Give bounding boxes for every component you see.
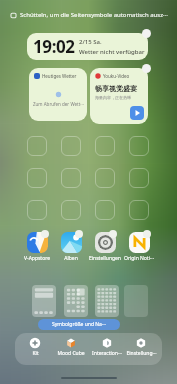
button[interactable]: Remove video widget <box>142 64 151 73</box>
button[interactable]: Mood Cube <box>65 337 77 349</box>
staticText: Einstellungen <box>89 255 121 262</box>
button[interactable]: Empty slot <box>27 200 47 220</box>
button[interactable]: Empty slot <box>129 168 149 188</box>
button[interactable]: Empty slot <box>95 136 115 156</box>
staticText: Wetter nicht verfügbar <box>79 48 145 56</box>
staticText: 2/15 Sa. <box>79 38 102 46</box>
staticText: Origin Noti··· <box>124 255 154 262</box>
button[interactable]: Settings <box>135 337 147 349</box>
staticText: Kit <box>32 350 39 357</box>
staticText: Youku-Video <box>103 73 130 79</box>
button[interactable]: Origin Noti··· <box>122 232 156 262</box>
button[interactable]: Layout option 1 <box>32 285 56 317</box>
staticText: Mood Cube <box>57 350 85 357</box>
button[interactable]: Empty slot <box>95 168 115 188</box>
button[interactable]: Empty slot <box>129 136 149 156</box>
staticText: Heutiges Wetter <box>42 73 77 79</box>
button[interactable]: Heutiges Wetter <box>29 68 87 121</box>
button[interactable]: V-Appstore <box>20 232 54 262</box>
staticText: Alben <box>64 255 78 262</box>
button[interactable]: Layout option 3 <box>95 285 119 317</box>
staticText: 海量内容，正在热播 <box>95 95 131 100</box>
button[interactable]: Einstellungen <box>88 232 122 262</box>
button[interactable]: Empty slot <box>27 136 47 156</box>
button[interactable]: 19:02 <box>27 33 148 60</box>
staticText: Schütteln, um die Seitensymbole automati… <box>20 11 168 19</box>
button[interactable]: Empty slot <box>129 200 149 220</box>
staticText: Einstellung··· <box>126 350 157 357</box>
button[interactable]: Remove clock widget <box>142 29 151 38</box>
staticText: 19:02 <box>33 35 75 58</box>
button[interactable]: Settings <box>123 337 159 357</box>
button[interactable]: Interaction <box>89 337 125 357</box>
staticText: Interaction··· <box>92 350 122 357</box>
button[interactable]: Kit <box>29 337 41 349</box>
staticText: V-Appstore <box>24 255 50 262</box>
button[interactable]: Symbolgröße und Na··· <box>38 319 120 330</box>
button[interactable]: Empty slot <box>61 136 81 156</box>
button[interactable]: Alben <box>54 232 88 262</box>
button[interactable]: Empty slot <box>27 168 47 188</box>
button[interactable]: Layout option 4 <box>124 285 148 317</box>
button[interactable]: Youku-Video <box>90 68 148 124</box>
staticText: 畅享视觉盛宴 <box>95 84 137 93</box>
button[interactable]: Layout option 2 <box>64 285 88 317</box>
button[interactable]: Kit <box>17 337 53 357</box>
button[interactable]: Empty slot <box>95 200 115 220</box>
button[interactable]: Empty slot <box>61 200 81 220</box>
button[interactable]: Mood Cube <box>53 337 89 357</box>
button[interactable]: Empty slot <box>61 168 81 188</box>
button[interactable]: Interaction <box>101 337 113 349</box>
staticText: Zum Abrufen der Wett··· <box>33 101 84 107</box>
staticText: Symbolgröße und Na··· <box>52 321 106 328</box>
